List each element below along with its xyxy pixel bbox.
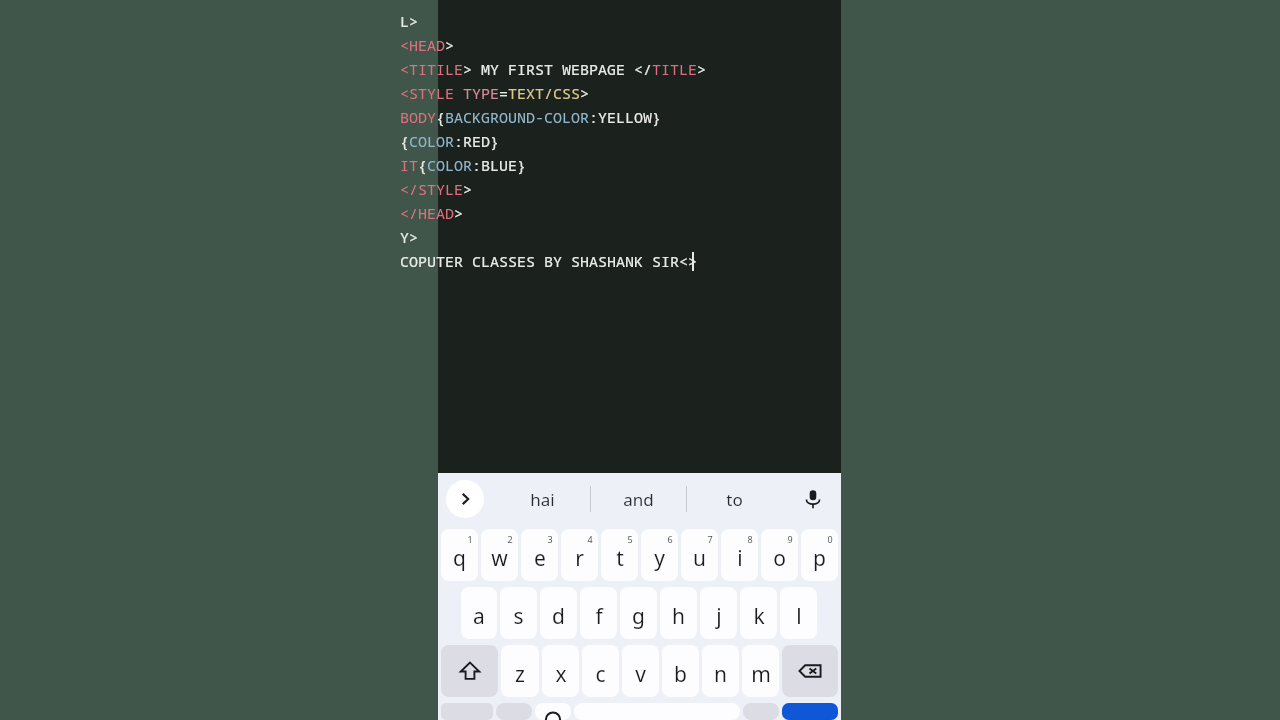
staticText: m <box>751 660 771 689</box>
staticText: <HEAD> <box>400 35 455 55</box>
staticText: {COLOR:RED} <box>400 131 500 151</box>
button[interactable]: w <box>481 529 518 581</box>
button[interactable]: u <box>681 529 718 581</box>
staticText: u <box>693 544 706 573</box>
staticText: to <box>726 488 743 511</box>
button[interactable]: m <box>742 645 779 697</box>
staticText: k <box>753 602 765 631</box>
staticText: b <box>674 660 687 689</box>
staticText: <TITILE> MY FIRST WEBPAGE </TITLE> <box>400 59 707 79</box>
button[interactable]: Emoji <box>535 703 571 720</box>
button[interactable]: b <box>662 645 699 697</box>
button[interactable]: i <box>721 529 758 581</box>
staticText: 1 <box>467 533 473 545</box>
staticText: 3 <box>547 533 553 545</box>
button[interactable]: t <box>601 529 638 581</box>
staticText: COPUTER CLASSES BY SHASHANK SIR<> <box>400 251 698 271</box>
button[interactable]: l <box>780 587 817 639</box>
staticText: v <box>635 660 646 689</box>
staticText: d <box>552 602 565 631</box>
staticText: z <box>515 660 525 689</box>
button[interactable]: k <box>740 587 777 639</box>
staticText: 8 <box>747 533 753 545</box>
button[interactable]: r <box>561 529 598 581</box>
button[interactable]: x <box>542 645 579 697</box>
staticText: y <box>654 544 665 573</box>
staticText: 6 <box>667 533 673 545</box>
button[interactable]: Enter <box>782 703 838 720</box>
button[interactable]: z <box>501 645 539 697</box>
button[interactable]: Voice input <box>793 479 833 519</box>
button[interactable]: o <box>761 529 798 581</box>
staticText: and <box>623 488 654 511</box>
staticText: 0 <box>827 533 833 545</box>
staticText: 5 <box>627 533 633 545</box>
staticText: n <box>714 660 727 689</box>
staticText: </STYLE> <box>400 179 473 199</box>
staticText: c <box>595 660 606 689</box>
staticText: 2 <box>507 533 513 545</box>
staticText: g <box>632 602 645 631</box>
button[interactable]: d <box>540 587 577 639</box>
staticText: i <box>737 544 743 573</box>
staticText: 4 <box>587 533 593 545</box>
button[interactable]: Comma <box>496 703 532 720</box>
button[interactable]: y <box>641 529 678 581</box>
staticText: s <box>513 602 524 631</box>
staticText: 7 <box>707 533 713 545</box>
staticText: q <box>453 544 466 573</box>
button[interactable]: Expand suggestions <box>446 480 484 518</box>
staticText: hai <box>530 488 555 511</box>
button[interactable]: n <box>702 645 739 697</box>
button[interactable]: Shift <box>441 645 498 697</box>
staticText: </HEAD> <box>400 203 464 223</box>
staticText: <STYLE TYPE=TEXT/CSS> <box>400 83 590 103</box>
button[interactable]: p <box>801 529 838 581</box>
staticText: e <box>534 544 546 573</box>
button[interactable]: Backspace <box>782 645 838 697</box>
staticText: IT{COLOR:BLUE} <box>400 155 527 175</box>
staticText: BODY{BACKGROUND-COLOR:YELLOW} <box>400 107 662 127</box>
button[interactable]: j <box>700 587 737 639</box>
staticText: L> <box>400 11 419 31</box>
staticText: t <box>616 544 624 573</box>
staticText: a <box>473 602 485 631</box>
button[interactable]: and <box>591 473 686 525</box>
staticText: r <box>575 544 584 573</box>
button[interactable]: Period <box>743 703 779 720</box>
staticText: o <box>773 544 786 573</box>
staticText: l <box>796 602 802 631</box>
button[interactable]: g <box>620 587 657 639</box>
button[interactable]: c <box>582 645 619 697</box>
staticText: j <box>716 602 722 631</box>
button[interactable]: q <box>441 529 478 581</box>
button[interactable]: to <box>687 473 782 525</box>
staticText: x <box>555 660 567 689</box>
staticText: Y> <box>400 227 419 247</box>
staticText: w <box>491 544 508 573</box>
staticText: h <box>672 602 685 631</box>
button[interactable]: v <box>622 645 659 697</box>
button[interactable]: e <box>521 529 558 581</box>
button[interactable]: hai <box>494 473 590 525</box>
button[interactable]: a <box>461 587 497 639</box>
staticText: 9 <box>787 533 793 545</box>
button[interactable]: f <box>580 587 617 639</box>
staticText: f <box>595 602 603 631</box>
staticText: p <box>813 544 826 573</box>
button[interactable]: s <box>500 587 537 639</box>
button[interactable]: h <box>660 587 697 639</box>
